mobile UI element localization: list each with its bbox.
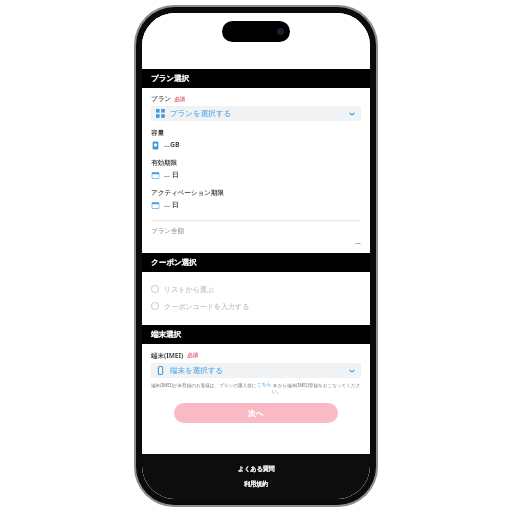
button[interactable]: 端末を選択する [151,363,361,378]
button[interactable]: プランを選択する [151,106,361,121]
staticText: 次へ [248,409,264,418]
staticText: よくある質問 [238,465,275,473]
staticText: --- [355,239,361,247]
staticText: クーポン選択 [151,258,197,267]
staticText: リストから選ぶ [164,285,214,294]
staticText: プラン全額 [151,227,184,235]
staticText: 有効期限 [151,159,177,167]
staticText: 必須 [174,96,185,103]
staticText: プランを選択する [170,109,232,118]
staticText: … 日 [164,170,179,180]
button[interactable]: 利用規約 [242,478,270,490]
button[interactable]: こちら [257,382,272,388]
staticText: 必須 [187,352,198,359]
button[interactable]: リストから選ぶ [151,281,361,297]
staticText: ⧉ から端末(IMEI)登録をおこなってください。 [272,382,361,394]
button[interactable]: クーポンコードを入力する [151,298,361,314]
staticText: 容量 [151,129,164,137]
staticText: 端末を選択する [170,366,224,375]
staticText: アクティベーション期限 [151,189,224,197]
staticText: … 日 [164,200,179,210]
staticText: …GB [164,140,180,150]
staticText: 端末選択 [151,330,181,339]
staticText: クーポンコードを入力する [164,302,250,311]
staticText: プラン選択 [151,74,190,83]
staticText: 端末(IMEI)が未登録のお客様は、プランの購入前に [151,382,257,388]
staticText: 利用規約 [244,480,268,488]
staticText: 端末(IMEI) [151,351,184,360]
button[interactable]: 次へ [174,403,338,423]
button[interactable]: よくある質問 [236,463,277,475]
staticText: プラン [151,95,171,103]
